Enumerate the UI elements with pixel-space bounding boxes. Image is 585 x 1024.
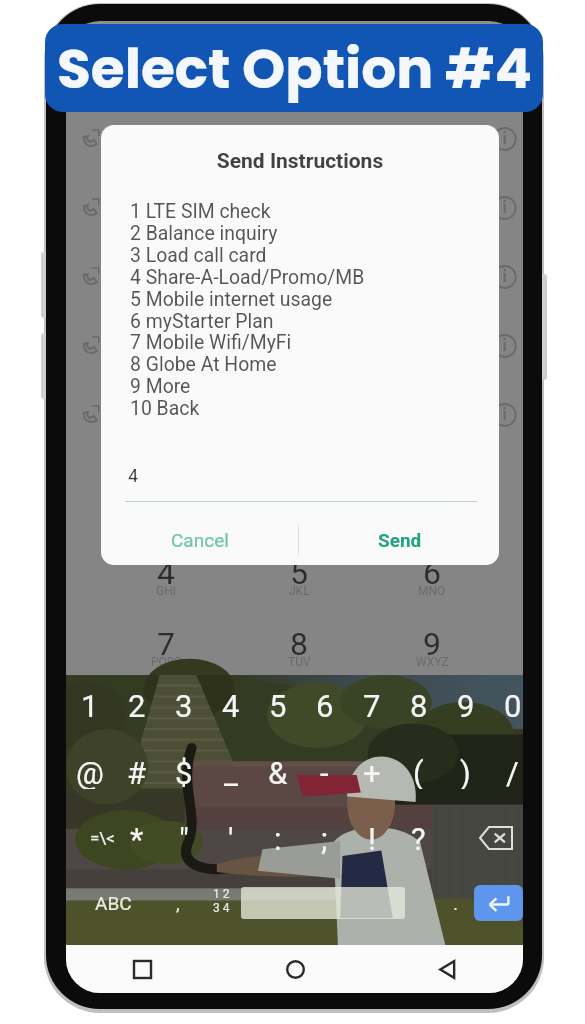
button[interactable]: ABC xyxy=(78,886,148,920)
staticText: TUV xyxy=(288,655,311,669)
button[interactable]: - xyxy=(301,755,348,789)
button[interactable]: ' xyxy=(207,821,254,855)
staticText: 9 xyxy=(457,688,475,722)
staticText: ; xyxy=(321,821,328,855)
staticText: GHI xyxy=(156,584,176,598)
button[interactable]: 4 xyxy=(207,688,254,722)
staticText: 7 xyxy=(157,625,175,663)
button[interactable]: ) xyxy=(442,755,489,789)
button[interactable]: 3 xyxy=(160,688,207,722)
button[interactable]: 8 xyxy=(249,625,349,687)
button[interactable]: # xyxy=(113,755,160,789)
staticText: ) xyxy=(460,755,471,789)
button[interactable]: Send xyxy=(300,515,499,565)
button[interactable]: 5 xyxy=(254,688,301,722)
button[interactable]: Enter xyxy=(474,885,523,921)
staticText: WXYZ xyxy=(416,655,449,669)
staticText: 7 Mobile Wifi/MyFi xyxy=(130,331,292,354)
staticText: 2 Balance inquiry xyxy=(130,222,278,245)
button[interactable]: , xyxy=(158,886,198,920)
staticText: =\< xyxy=(90,828,115,848)
staticText: + xyxy=(363,755,381,789)
button[interactable]: / xyxy=(489,755,523,789)
button[interactable]: Recents xyxy=(66,945,219,993)
staticText: 10 Back xyxy=(130,397,200,420)
staticText: " xyxy=(179,821,189,855)
staticText: 3 xyxy=(175,688,193,722)
staticText: 4 xyxy=(128,465,139,486)
button[interactable]: ? xyxy=(395,821,442,855)
button[interactable]: Home xyxy=(219,945,371,993)
button[interactable]: $ xyxy=(160,755,207,789)
staticText: . xyxy=(453,892,459,914)
button[interactable]: 2 xyxy=(113,688,160,722)
button[interactable]: 1 xyxy=(66,688,113,722)
button[interactable]: & xyxy=(254,755,301,789)
staticText: 5 xyxy=(290,554,308,592)
button[interactable]: =\< xyxy=(79,821,126,855)
button[interactable]: @ xyxy=(66,755,113,789)
button[interactable]: Space xyxy=(241,887,405,919)
staticText: 0 xyxy=(504,688,522,722)
button[interactable]: ; xyxy=(301,821,348,855)
button[interactable]: 1 2 xyxy=(199,884,243,918)
button[interactable]: Cancel xyxy=(101,515,299,565)
staticText: 9 More xyxy=(130,375,191,398)
staticText: $ xyxy=(175,755,193,789)
button[interactable]: 9 xyxy=(442,688,489,722)
button[interactable]: 7 xyxy=(348,688,395,722)
staticText: 1 2 xyxy=(213,887,230,901)
button[interactable]: _ xyxy=(207,755,254,789)
staticText: Cancel xyxy=(171,529,229,551)
staticText: ABC xyxy=(95,892,132,914)
staticText: ( xyxy=(413,755,424,789)
staticText: , xyxy=(176,892,180,914)
staticText: 2 xyxy=(128,688,146,722)
button[interactable]: + xyxy=(348,755,395,789)
staticText: / xyxy=(506,755,519,789)
staticText: ' xyxy=(228,821,234,855)
button[interactable]: . xyxy=(436,886,476,920)
staticText: _ xyxy=(224,755,238,789)
staticText: & xyxy=(268,755,288,789)
button[interactable]: Select Option #4 xyxy=(45,24,543,112)
staticText: 6 myStarter Plan xyxy=(130,310,274,333)
staticText: 4 xyxy=(157,554,175,592)
staticText: 3 4 xyxy=(213,901,230,915)
staticText: 7 xyxy=(363,688,381,722)
staticText: Send xyxy=(378,529,422,551)
staticText: 8 Globe At Home xyxy=(130,353,277,376)
staticText: 1 LTE SIM check xyxy=(130,200,271,223)
button[interactable]: 9 xyxy=(382,625,482,687)
staticText: 3 Load call card xyxy=(130,244,267,267)
staticText: JKL xyxy=(289,584,310,598)
staticText: 6 xyxy=(316,688,334,722)
button[interactable]: 7 xyxy=(116,625,216,687)
staticText: 1 xyxy=(81,688,99,722)
staticText: 8 xyxy=(410,688,428,722)
button[interactable]: 8 xyxy=(395,688,442,722)
button[interactable]: 6 xyxy=(301,688,348,722)
staticText: * xyxy=(130,821,144,855)
staticText: Send Instructions xyxy=(101,149,499,174)
button[interactable]: 5 xyxy=(249,554,349,616)
staticText: ! xyxy=(368,821,376,855)
staticText: @ xyxy=(76,755,104,789)
button[interactable]: * xyxy=(113,821,160,855)
button[interactable]: 4 xyxy=(116,554,216,616)
button[interactable]: 6 xyxy=(382,554,482,616)
staticText: PQRS xyxy=(151,655,182,669)
staticText: 5 xyxy=(269,688,287,722)
staticText: MNO xyxy=(418,584,446,598)
button[interactable]: " xyxy=(160,821,207,855)
button[interactable]: ( xyxy=(395,755,442,789)
button[interactable]: 0 xyxy=(489,688,523,722)
button[interactable]: ! xyxy=(348,821,395,855)
button[interactable]: Backspace xyxy=(472,821,519,855)
button[interactable]: : xyxy=(254,821,301,855)
staticText: # xyxy=(127,755,147,789)
staticText: 6 xyxy=(423,554,441,592)
button[interactable]: Back xyxy=(371,945,523,993)
staticText: 9 xyxy=(423,625,441,663)
staticText: 4 Share-A-Load/Promo/MB xyxy=(130,266,365,289)
